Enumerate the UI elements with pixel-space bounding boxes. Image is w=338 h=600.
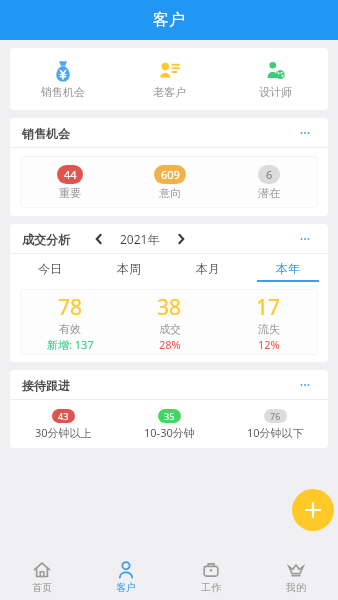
staticText: 成交 [159,322,181,336]
button[interactable]: 609 [120,156,219,208]
button[interactable]: 本周 [89,254,168,282]
staticText: 意向 [159,186,181,200]
button[interactable]: 更多 [294,122,316,144]
button[interactable]: 今日 [10,254,89,282]
button[interactable]: 43 [10,400,116,448]
staticText: 17 [256,293,281,322]
button[interactable]: 首页 [0,554,84,600]
staticText: 12% [258,337,280,352]
staticText: 43 [58,410,69,422]
button[interactable]: 销售机会 [10,48,116,110]
button[interactable]: 更多 [294,374,316,396]
staticText: 新增: 137 [47,337,94,352]
staticText: 我的 [286,581,306,594]
staticText: 流失 [258,322,280,336]
staticText: 28% [159,337,181,352]
staticText: 44 [64,167,77,182]
staticText: 老客户 [153,85,186,99]
staticText: 销售机会 [22,126,70,141]
button[interactable]: 本年 [248,254,328,282]
button[interactable]: 更多 [294,228,316,250]
staticText: 销售机会 [41,85,85,99]
button[interactable]: 76 [222,400,328,448]
staticText: 潜在 [258,186,280,200]
button[interactable]: 78 [20,289,120,355]
button[interactable]: 设计师 [222,48,328,110]
button[interactable]: 38 [120,289,219,355]
staticText: 76 [270,410,281,422]
staticText: 10-30分钟 [144,425,195,440]
staticText: 2021年 [120,231,160,247]
staticText: 客户 [153,10,185,30]
button[interactable]: 6 [219,156,318,208]
button[interactable]: 工作 [168,554,253,600]
staticText: 6 [266,167,273,182]
staticText: 30分钟以上 [35,425,92,440]
staticText: 设计师 [259,85,292,99]
staticText: 本年 [276,261,300,276]
button[interactable]: 上一年 [88,228,110,250]
staticText: 接待跟进 [22,378,70,393]
staticText: 本月 [196,261,220,276]
staticText: 成交分析 [22,232,70,247]
staticText: 首页 [32,581,52,594]
staticText: 有效 [59,322,81,336]
staticText: 今日 [38,261,62,276]
button[interactable]: 添加 [292,489,334,531]
staticText: 本周 [117,261,141,276]
staticText: 35 [164,410,175,422]
button[interactable]: 我的 [253,554,338,600]
button[interactable]: 本月 [168,254,248,282]
staticText: 609 [161,167,180,182]
staticText: 工作 [201,581,221,594]
staticText: 10分钟以下 [247,425,304,440]
button[interactable]: 44 [20,156,120,208]
button[interactable]: 下一年 [170,228,192,250]
staticText: 重要 [59,186,81,200]
button[interactable]: 35 [116,400,222,448]
staticText: 38 [157,293,182,322]
staticText: 客户 [116,581,136,594]
button[interactable]: 老客户 [116,48,222,110]
button[interactable]: 17 [219,289,318,355]
button[interactable]: 客户 [84,554,168,600]
staticText: 78 [58,293,83,322]
